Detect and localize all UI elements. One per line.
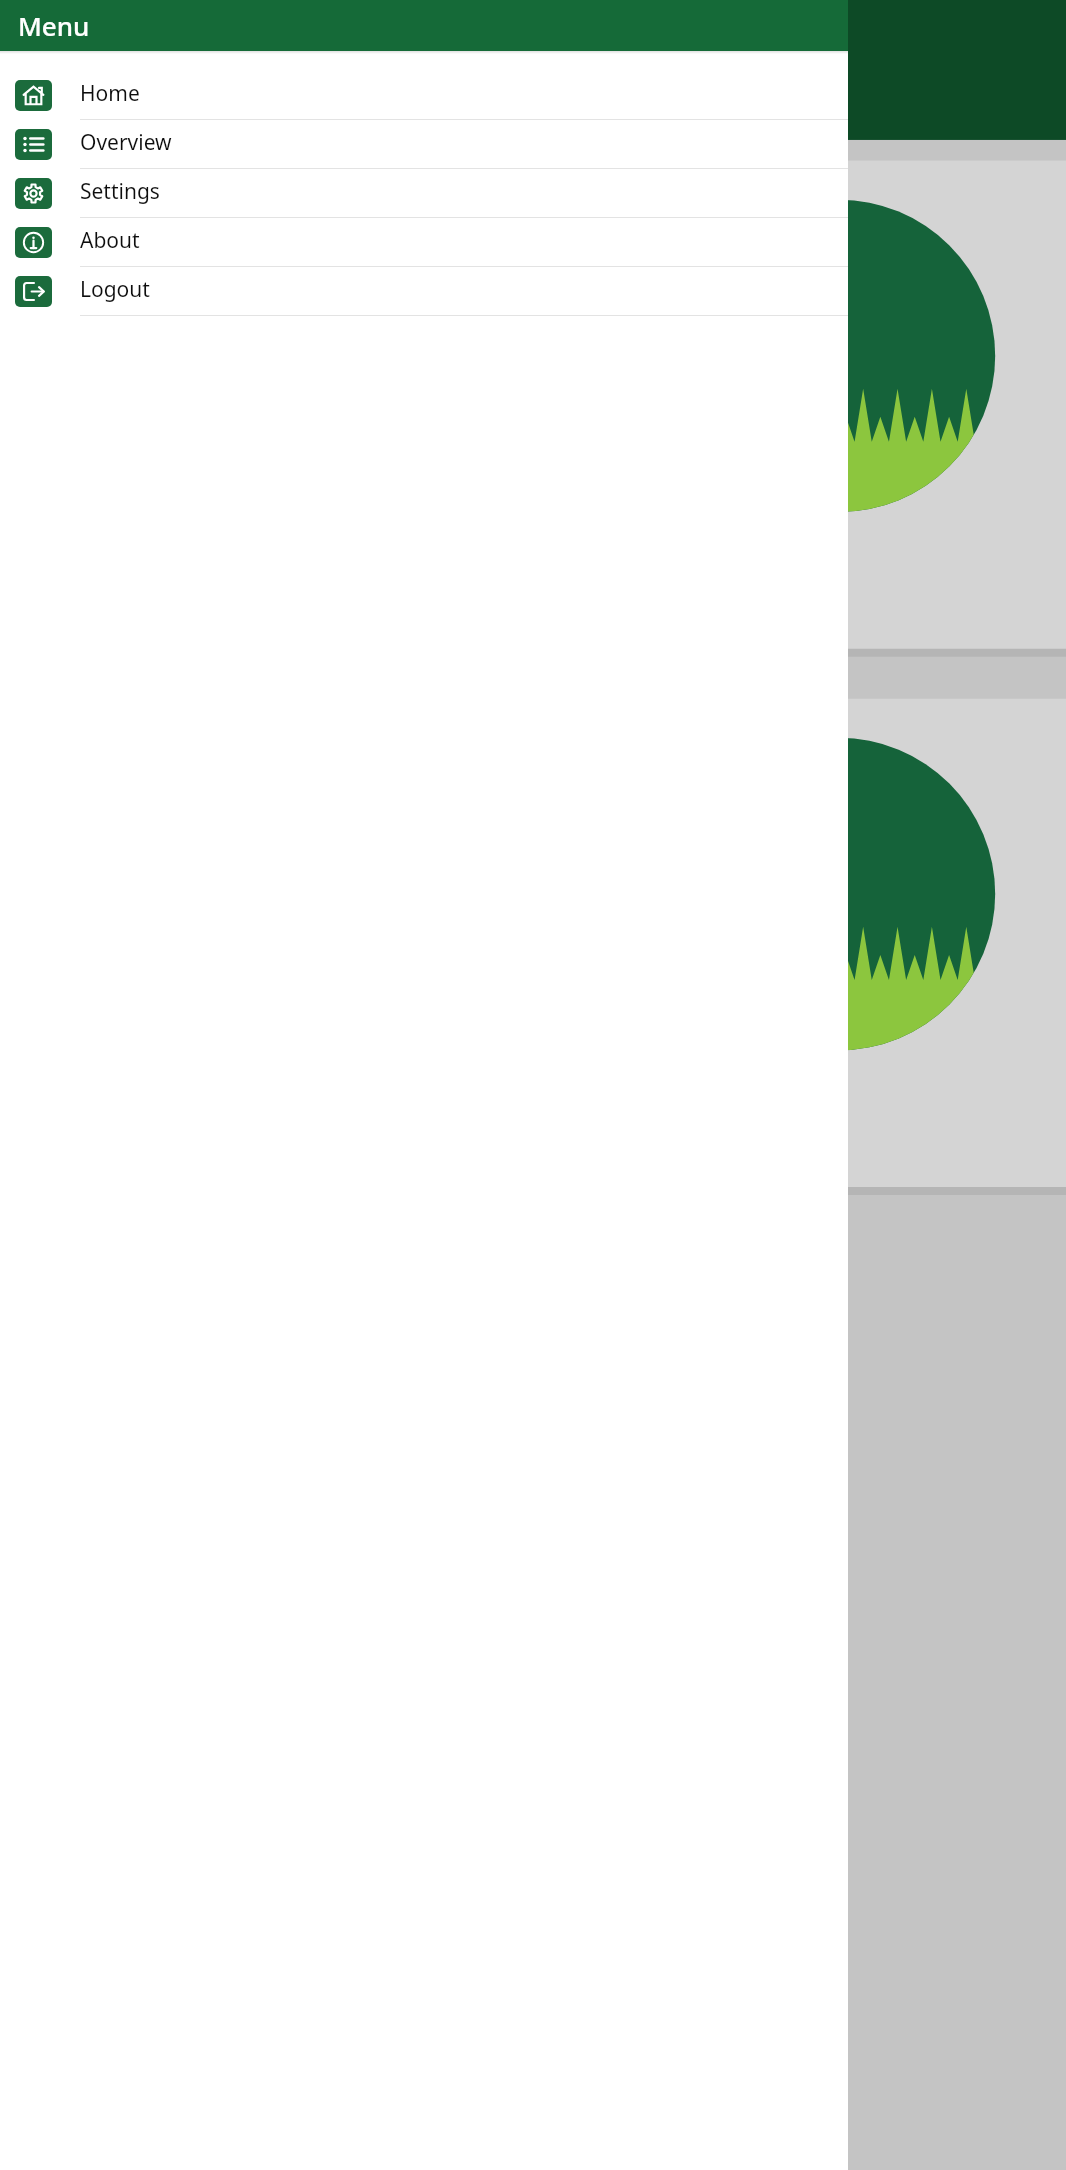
- other: Settings: [22, 182, 45, 205]
- staticText: Home: [80, 79, 140, 108]
- staticText: Logout: [80, 275, 150, 304]
- staticText: Menu: [18, 8, 90, 43]
- staticText: Settings: [80, 177, 160, 206]
- button[interactable]: About: [0, 218, 848, 267]
- button[interactable]: Home: [0, 71, 848, 120]
- other: Home: [22, 84, 45, 107]
- other: About: [22, 231, 45, 254]
- button[interactable]: Settings: [0, 169, 848, 218]
- other: Logout: [22, 280, 45, 303]
- other: Overview: [22, 133, 45, 156]
- button[interactable]: Logout: [0, 267, 848, 316]
- staticText: Overview: [80, 128, 172, 157]
- staticText: About: [80, 226, 140, 255]
- button[interactable]: Overview: [0, 120, 848, 169]
